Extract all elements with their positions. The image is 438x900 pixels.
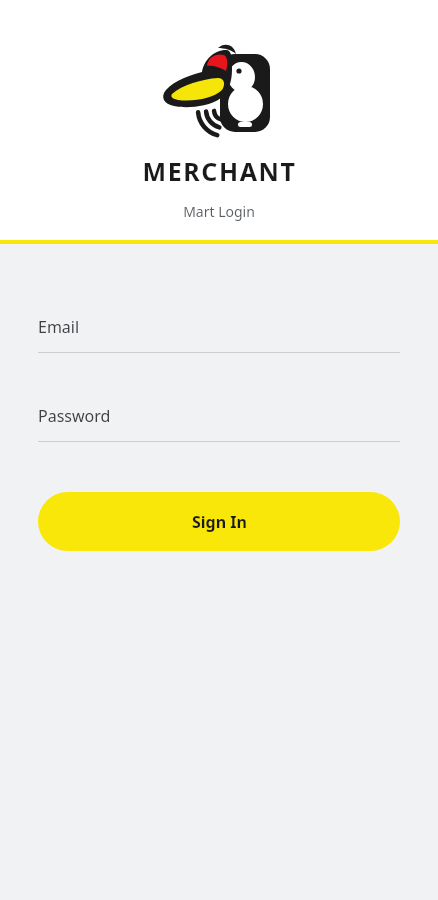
staticText: Mart Login [183, 202, 255, 221]
staticText: MERCHANT [142, 154, 297, 188]
other: Merchant Mart logo [154, 40, 284, 150]
staticText: Email [38, 316, 80, 338]
button[interactable]: Password [38, 405, 400, 442]
staticText: Sign In [192, 511, 247, 533]
button[interactable]: Email [38, 316, 400, 353]
staticText: Password [38, 405, 111, 427]
button[interactable]: Sign In [38, 492, 400, 551]
